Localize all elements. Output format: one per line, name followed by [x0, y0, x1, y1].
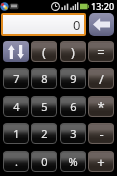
button[interactable]: Backspace	[89, 13, 114, 36]
button[interactable]: 9	[60, 68, 86, 89]
button[interactable]: 3	[60, 123, 86, 144]
staticText: 8	[41, 71, 48, 86]
staticText: 13:20	[91, 0, 115, 12]
staticText: 1	[13, 126, 20, 141]
staticText: 7	[13, 71, 20, 86]
staticText: /	[99, 70, 104, 88]
button[interactable]: =	[88, 41, 114, 62]
staticText: 3	[70, 126, 77, 141]
button[interactable]: -	[88, 123, 114, 144]
button[interactable]: Swap arguments	[3, 41, 29, 62]
staticText: +	[97, 153, 105, 171]
staticText: *	[97, 98, 105, 116]
staticText: 0	[41, 154, 48, 169]
button[interactable]: %	[60, 151, 86, 172]
staticText: .	[15, 154, 18, 169]
staticText: 5	[41, 99, 48, 114]
staticText: 0	[73, 16, 81, 34]
button[interactable]: .	[3, 151, 29, 172]
staticText: =	[97, 43, 105, 61]
staticText: -	[99, 125, 104, 143]
button[interactable]: +	[88, 151, 114, 172]
staticText: 9	[70, 71, 77, 86]
button[interactable]: 1	[3, 123, 29, 144]
button[interactable]: /	[88, 68, 114, 89]
staticText: (	[42, 43, 46, 61]
staticText: 2	[41, 126, 48, 141]
button[interactable]: 0	[31, 151, 57, 172]
button[interactable]: 7	[3, 68, 29, 89]
button[interactable]: 8	[31, 68, 57, 89]
staticText: 4	[13, 99, 20, 114]
button[interactable]: 5	[31, 96, 57, 117]
staticText: %	[68, 154, 78, 169]
button[interactable]: 6	[60, 96, 86, 117]
staticText: )	[71, 43, 75, 61]
button[interactable]: )	[60, 41, 86, 62]
staticText: 6	[70, 99, 77, 114]
button[interactable]: *	[88, 96, 114, 117]
button[interactable]: 2	[31, 123, 57, 144]
button[interactable]: (	[31, 41, 57, 62]
button[interactable]: 4	[3, 96, 29, 117]
